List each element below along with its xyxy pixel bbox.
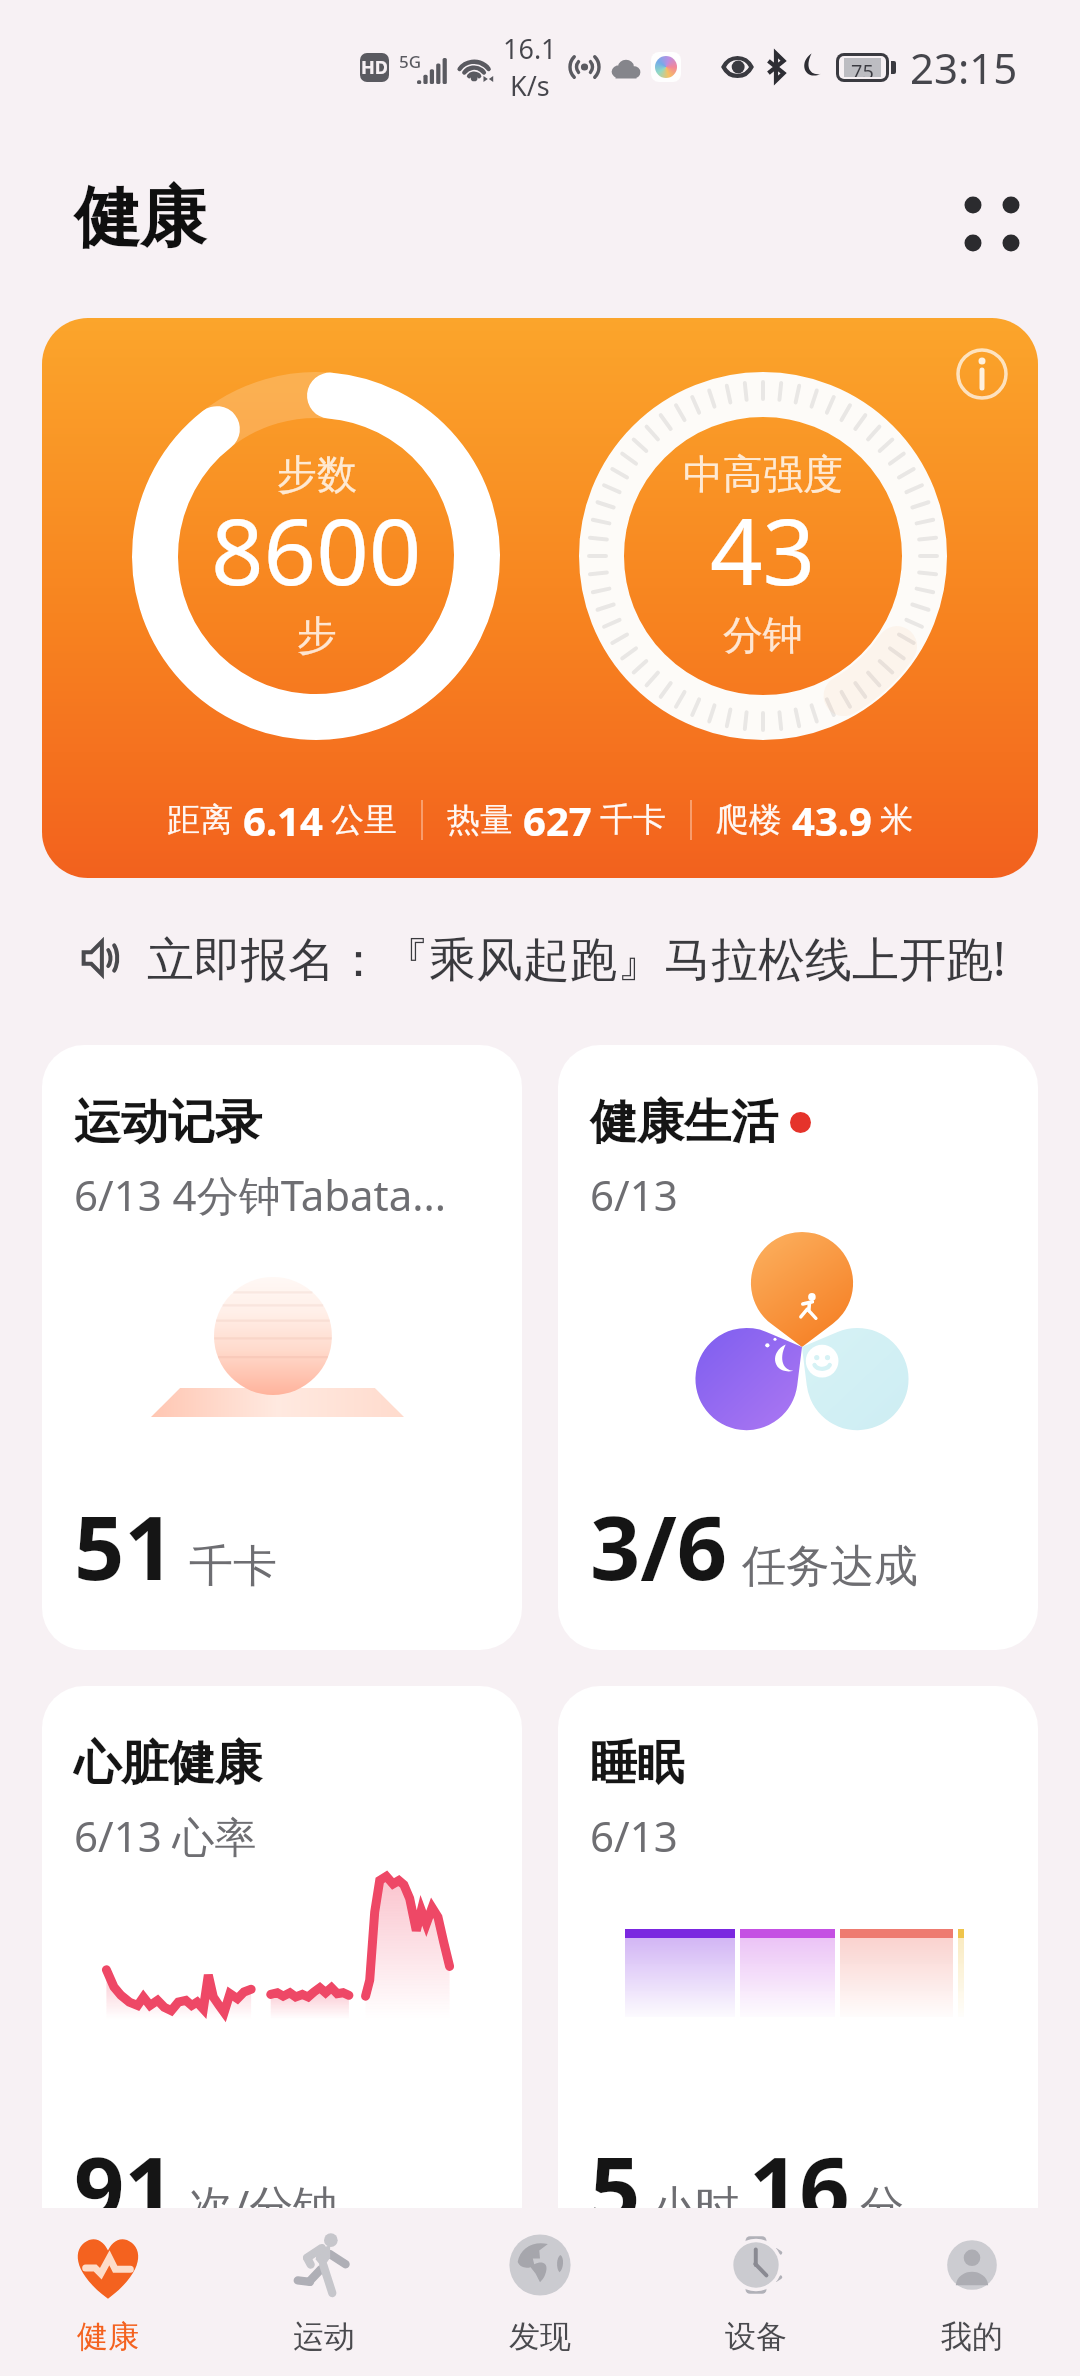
staticText: 距离 [167, 799, 233, 841]
staticText: 米 [880, 799, 913, 841]
button[interactable]: 设备 [648, 2208, 864, 2376]
button[interactable]: 心脏健康 [42, 1686, 522, 2291]
staticText: 健康 [74, 176, 206, 259]
staticText: 5G [399, 50, 422, 73]
staticText: 健康 [77, 2317, 139, 2356]
staticText: 运动记录 [74, 1093, 262, 1152]
staticText: 发现 [509, 2317, 571, 2356]
staticText: 小时 [651, 2180, 739, 2235]
staticText: 6/13 4分钟Tabata... [74, 1166, 447, 1223]
staticText: 6/13 [590, 1166, 678, 1223]
staticText: 91 [74, 2127, 175, 2247]
staticText: HD [361, 55, 388, 80]
button[interactable]: 健康 [0, 2208, 216, 2376]
staticText: 心脏健康 [74, 1734, 262, 1793]
staticText: 次/分钟 [189, 2175, 338, 2235]
staticText: 热量 [447, 799, 513, 841]
staticText: 立即报名：『乘风起跑』马拉松线上开跑! [147, 926, 1006, 990]
staticText: 分钟 [723, 610, 803, 660]
button[interactable]: Info [42, 318, 1038, 878]
staticText: 我的 [941, 2317, 1003, 2356]
staticText: 6.14 [243, 793, 323, 847]
staticText: 51 [74, 1486, 175, 1606]
staticText: 6/13 [590, 1807, 678, 1864]
staticText: 3/6 [590, 1486, 728, 1606]
staticText: K/s [510, 67, 550, 104]
button[interactable]: 健康生活 [558, 1045, 1038, 1650]
staticText: 千卡 [600, 799, 666, 841]
staticText: 5 [590, 2127, 641, 2247]
button[interactable]: More options [942, 174, 1042, 274]
button[interactable]: 运动 [216, 2208, 432, 2376]
button[interactable]: 发现 [432, 2208, 648, 2376]
button[interactable]: 立即报名：『乘风起跑』马拉松线上开跑! [42, 926, 1038, 990]
staticText: 运动 [293, 2317, 355, 2356]
staticText: 健康生活 [590, 1093, 778, 1152]
button[interactable]: 运动记录 [42, 1045, 522, 1650]
button[interactable]: Info [948, 340, 1016, 408]
staticText: 43.9 [792, 793, 872, 847]
staticText: 千卡 [189, 1539, 277, 1594]
button[interactable]: 睡眠 [558, 1686, 1038, 2291]
staticText: 步数 [277, 449, 357, 499]
staticText: 16.1 [503, 30, 557, 67]
staticText: 627 [523, 793, 592, 847]
staticText: 爬楼 [716, 799, 782, 841]
staticText: 23:15 [910, 39, 1018, 96]
staticText: 分 [860, 2180, 904, 2235]
staticText: 设备 [725, 2317, 787, 2356]
staticText: 中高强度 [683, 449, 843, 499]
staticText: 公里 [331, 799, 397, 841]
staticText: 步 [297, 610, 337, 660]
button[interactable]: 我的 [864, 2208, 1080, 2376]
staticText: 任务达成 [742, 1539, 918, 1594]
staticText: 16 [749, 2127, 850, 2247]
staticText: 8600 [211, 487, 422, 612]
staticText: 43 [710, 487, 816, 612]
staticText: 75 [851, 58, 874, 77]
staticText: 6/13 心率 [74, 1807, 257, 1864]
staticText: 睡眠 [590, 1734, 684, 1793]
